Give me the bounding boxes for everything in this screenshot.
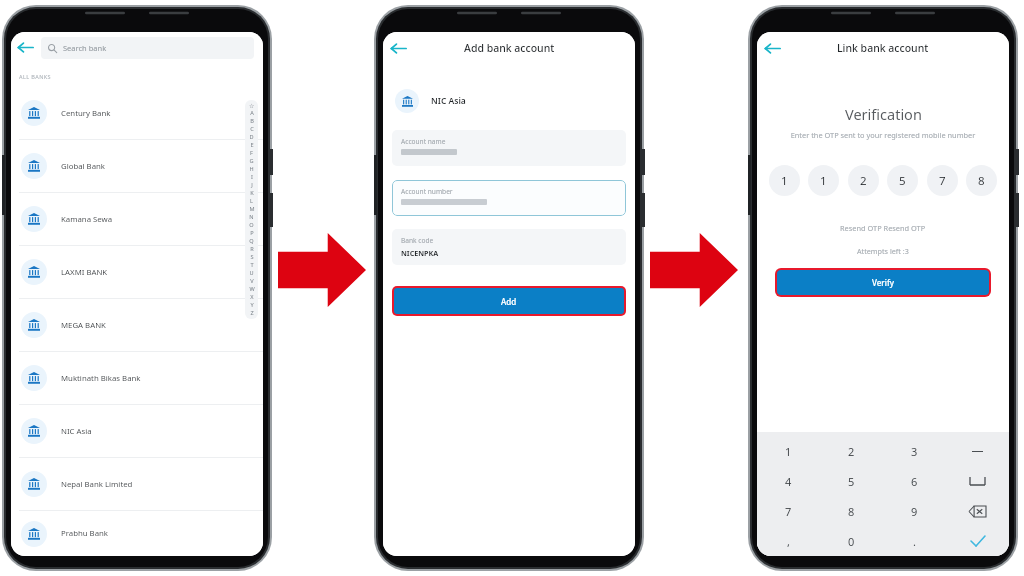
button[interactable]: Space bbox=[946, 466, 1009, 496]
button[interactable]: 6 bbox=[883, 466, 946, 496]
staticText: R bbox=[250, 245, 254, 253]
button[interactable]: Prabhu Bank bbox=[11, 511, 263, 556]
button[interactable]: 7 bbox=[927, 165, 958, 196]
button[interactable]: Century Bank bbox=[11, 87, 263, 139]
staticText: S bbox=[250, 253, 254, 261]
staticText: Search bank bbox=[63, 43, 107, 53]
staticText: Bank code bbox=[401, 236, 434, 245]
staticText: 1 bbox=[785, 444, 792, 459]
staticText: Link bank account bbox=[837, 41, 929, 55]
button[interactable]: NIC Asia bbox=[11, 405, 263, 457]
staticText: L bbox=[250, 197, 253, 205]
staticText: Enter the OTP sent to your registered mo… bbox=[771, 130, 995, 140]
button[interactable]: Account name bbox=[392, 130, 626, 166]
staticText: ALL BANKS bbox=[19, 73, 52, 80]
button[interactable]: Kamana Sewa bbox=[11, 193, 263, 245]
staticText: 2 bbox=[848, 444, 855, 459]
staticText: B bbox=[250, 117, 254, 125]
button[interactable]: 5 bbox=[820, 466, 883, 496]
staticText: K bbox=[250, 189, 254, 197]
staticText: O bbox=[249, 221, 254, 229]
button[interactable]: 4 bbox=[757, 466, 820, 496]
button[interactable]: Account number bbox=[392, 180, 626, 216]
staticText: 7 bbox=[785, 504, 792, 519]
staticText: NICENPKA bbox=[401, 248, 439, 258]
staticText: MEGA BANK bbox=[61, 320, 106, 331]
staticText: H bbox=[249, 165, 254, 173]
button[interactable]: 2 bbox=[848, 165, 879, 196]
button[interactable]: ☆ bbox=[245, 100, 258, 319]
staticText: U bbox=[249, 269, 254, 277]
staticText: 6 bbox=[911, 474, 918, 489]
staticText: 0 bbox=[848, 534, 855, 549]
button[interactable]: 2 bbox=[820, 437, 883, 466]
staticText: E bbox=[250, 141, 254, 149]
button[interactable]: Back bbox=[764, 40, 781, 57]
staticText: 8 bbox=[848, 504, 855, 519]
staticText: Global Bank bbox=[61, 161, 106, 172]
button[interactable]: 1 bbox=[769, 165, 800, 196]
staticText: N bbox=[249, 213, 254, 221]
staticText: Add bbox=[501, 296, 517, 307]
staticText: 1 bbox=[820, 173, 827, 189]
button[interactable]: Verify bbox=[777, 270, 989, 295]
button[interactable]: 7 bbox=[757, 496, 820, 526]
staticText: X bbox=[250, 293, 254, 301]
button[interactable]: Bank code bbox=[392, 229, 626, 265]
staticText: Nepal Bank Limited bbox=[61, 479, 133, 490]
staticText: Muktinath Bikas Bank bbox=[61, 373, 141, 384]
button[interactable]: 5 bbox=[887, 165, 918, 196]
button[interactable]: Done bbox=[946, 526, 1009, 556]
button[interactable]: 8 bbox=[966, 165, 997, 196]
staticText: Account name bbox=[401, 137, 446, 146]
staticText: A bbox=[250, 109, 254, 117]
staticText: 1 bbox=[781, 173, 788, 189]
button[interactable]: . bbox=[883, 526, 946, 556]
staticText: D bbox=[249, 133, 254, 141]
button[interactable]: Global Bank bbox=[11, 140, 263, 192]
staticText: Q bbox=[249, 237, 254, 245]
staticText: ☆ bbox=[249, 102, 255, 109]
button[interactable]: Dash bbox=[946, 437, 1009, 466]
staticText: 3 bbox=[911, 444, 918, 459]
button[interactable]: 1 bbox=[808, 165, 839, 196]
staticText: P bbox=[250, 229, 254, 237]
staticText: 4 bbox=[785, 474, 792, 489]
staticText: I bbox=[251, 173, 253, 181]
button[interactable]: Back bbox=[390, 40, 407, 57]
staticText: V bbox=[250, 277, 254, 285]
staticText: 5 bbox=[848, 474, 855, 489]
button[interactable]: 1 bbox=[757, 437, 820, 466]
staticText: 9 bbox=[911, 504, 918, 519]
staticText: Attempts left :3 bbox=[857, 246, 909, 256]
button[interactable]: 9 bbox=[883, 496, 946, 526]
button[interactable]: 3 bbox=[883, 437, 946, 466]
button[interactable]: Nepal Bank Limited bbox=[11, 458, 263, 510]
button[interactable]: , bbox=[757, 526, 820, 556]
staticText: . bbox=[913, 534, 916, 549]
staticText: Z bbox=[250, 309, 254, 317]
staticText: F bbox=[250, 149, 253, 157]
button[interactable]: 8 bbox=[820, 496, 883, 526]
button[interactable]: 0 bbox=[820, 526, 883, 556]
staticText: Account number bbox=[401, 187, 453, 196]
staticText: LAXMI BANK bbox=[61, 267, 108, 278]
button[interactable]: MEGA BANK bbox=[11, 299, 263, 351]
staticText: Resend OTP Resend OTP bbox=[840, 223, 926, 233]
button[interactable]: Resend OTP Resend OTP bbox=[840, 223, 926, 233]
button[interactable]: Back bbox=[17, 39, 34, 56]
staticText: 2 bbox=[860, 173, 867, 189]
staticText: G bbox=[249, 157, 254, 165]
staticText: 7 bbox=[939, 173, 946, 189]
staticText: W bbox=[249, 285, 255, 293]
button[interactable]: LAXMI BANK bbox=[11, 246, 263, 298]
staticText: C bbox=[250, 125, 254, 133]
staticText: 8 bbox=[978, 173, 985, 189]
button[interactable]: Add bbox=[394, 288, 624, 314]
button[interactable]: Muktinath Bikas Bank bbox=[11, 352, 263, 404]
staticText: Y bbox=[250, 301, 254, 309]
button[interactable]: Search bank bbox=[41, 37, 254, 59]
staticText: J bbox=[251, 181, 253, 189]
button[interactable]: Delete bbox=[946, 496, 1009, 526]
staticText: 5 bbox=[899, 173, 906, 189]
